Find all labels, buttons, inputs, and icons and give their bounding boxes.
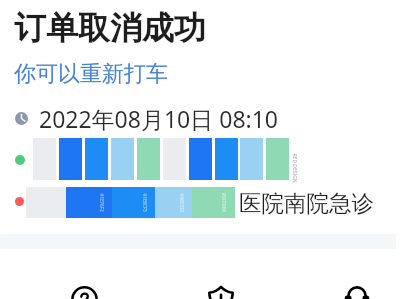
button[interactable]: Safety: [208, 285, 234, 299]
staticText: RED DESIGN: [290, 153, 297, 183]
staticText: 订单取消成功: [14, 8, 206, 48]
staticText: 医院南院急诊: [239, 189, 374, 217]
staticText: #1E8CF5: [141, 193, 147, 212]
button[interactable]: Customer support: [344, 284, 370, 299]
button[interactable]: 你可以重新打车: [14, 60, 168, 88]
staticText: #8FD9B4: [221, 193, 227, 213]
button[interactable]: Help: [71, 286, 98, 299]
staticText: #1E76F2: [98, 193, 104, 212]
staticText: #98D1F2: [178, 193, 184, 212]
staticText: 2022年08月10日 08:10: [39, 103, 279, 134]
staticText: 你可以重新打车: [14, 60, 168, 88]
